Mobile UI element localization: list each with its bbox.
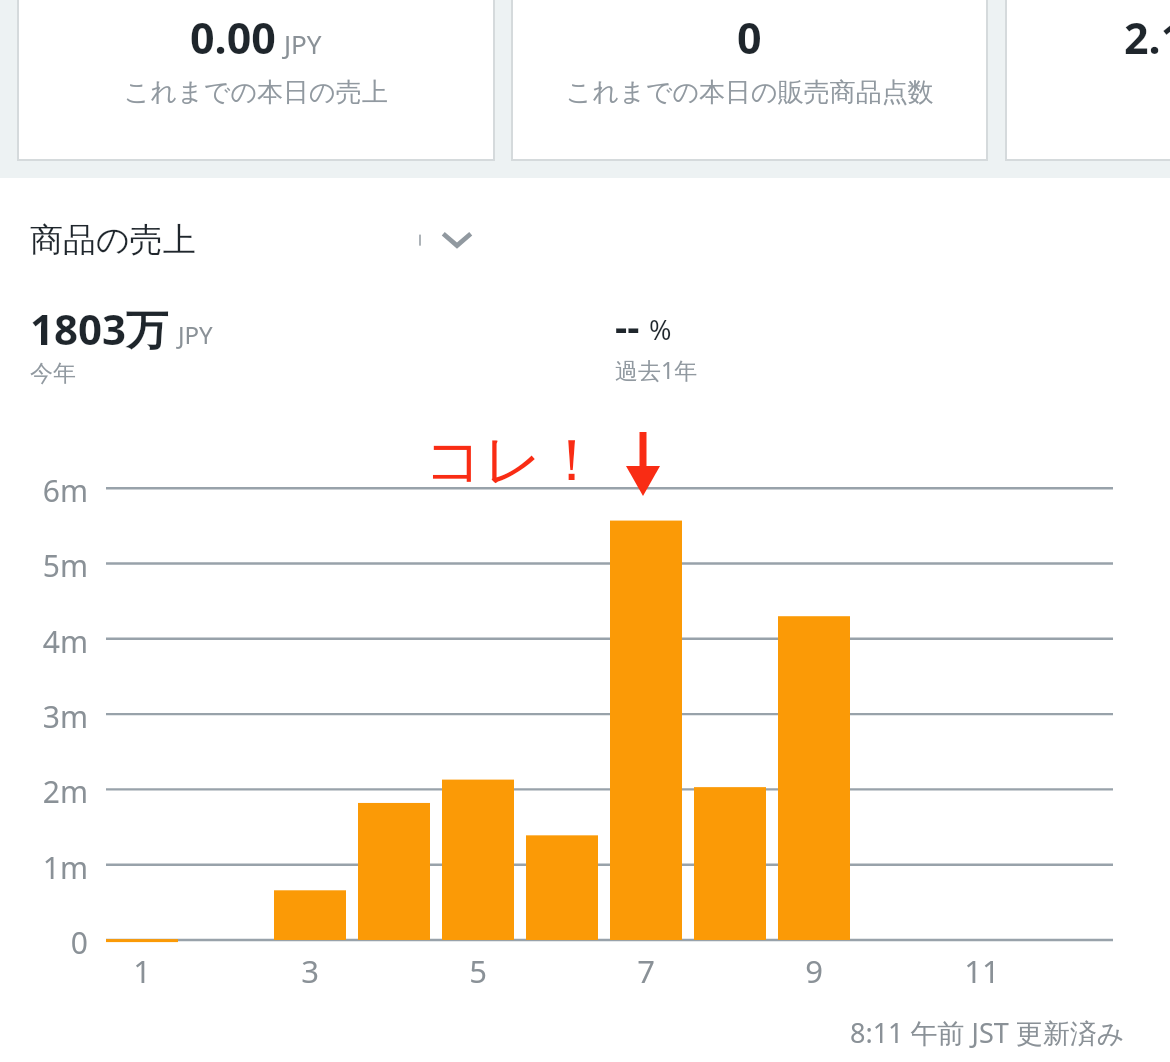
staticText: 1 (133, 950, 151, 992)
staticText: コレ！ (424, 424, 601, 497)
staticText: JPY (178, 318, 213, 351)
staticText: これまでの本日の販売商品点数 (566, 76, 934, 109)
staticText: 5m (42, 545, 88, 586)
staticText: % (649, 311, 672, 348)
staticText: 商品の売上 (30, 219, 196, 261)
staticText: 2m (42, 771, 88, 812)
staticText: 5 (469, 950, 487, 992)
staticText: 11 (964, 950, 1000, 992)
staticText: 6m (42, 470, 88, 511)
staticText: JPY (284, 26, 322, 61)
staticText: 0 (70, 922, 88, 963)
staticText: 過去1年 (615, 354, 698, 385)
staticText: 7 (637, 950, 655, 992)
staticText: 3m (42, 696, 88, 737)
staticText: 8:11 午前 JST 更新済み (850, 1014, 1125, 1051)
button[interactable]: 商品の売上 (30, 208, 482, 272)
staticText: 1803万 (30, 300, 169, 357)
staticText: 3 (301, 950, 319, 992)
staticText: 今年 (30, 359, 76, 388)
staticText: これまでの本日の売上 (124, 76, 388, 109)
staticText: 9 (805, 950, 823, 992)
button[interactable]: 0.00 (17, 0, 495, 160)
staticText: 1m (42, 847, 88, 888)
button[interactable]: 2.1 (1005, 0, 1170, 160)
staticText: 4m (42, 621, 88, 662)
staticText: 0.00 (190, 8, 276, 67)
button[interactable]: 0 (511, 0, 988, 160)
staticText: -- (615, 300, 640, 352)
staticText: 0 (737, 8, 762, 67)
staticText: 2.1 (1124, 8, 1170, 67)
